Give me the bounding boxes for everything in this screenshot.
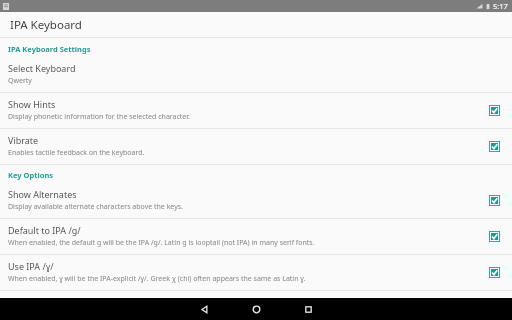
button[interactable]: Use IPA /ɣ/	[484, 262, 504, 282]
staticText: Show Hints	[8, 98, 56, 110]
button[interactable]: Show Hints	[484, 100, 504, 120]
staticText: When enabled, the default g will be the …	[8, 238, 315, 248]
staticText: 5:17	[493, 1, 508, 11]
button[interactable]: Vibrate	[484, 136, 504, 156]
button[interactable]: Show Alternates	[0, 183, 512, 218]
staticText: Key Options	[8, 170, 54, 180]
button[interactable]: Select Keyboard	[0, 57, 512, 92]
button[interactable]: Use IPA /ɣ/	[0, 255, 512, 290]
button[interactable]: Default to IPA /g/	[0, 219, 512, 254]
staticText: Display phonetic information for the sel…	[8, 112, 190, 122]
button[interactable]: Back	[178, 298, 230, 320]
staticText: Show Alternates	[8, 188, 77, 200]
staticText: Display available alternate characters a…	[8, 202, 183, 212]
staticText: Default to IPA /g/	[8, 224, 81, 236]
button[interactable]: Show Hints	[0, 93, 512, 128]
button[interactable]: Default to IPA /g/	[484, 226, 504, 246]
button[interactable]: Vibrate	[0, 129, 512, 164]
button[interactable]: Home	[230, 298, 282, 320]
staticText: Use IPA /ɣ/	[8, 260, 54, 272]
button[interactable]: Show Alternates	[484, 190, 504, 210]
staticText: Select Keyboard	[8, 62, 76, 74]
staticText: Qwerty	[8, 76, 32, 86]
staticText: IPA Keyboard Settings	[8, 44, 91, 54]
button[interactable]: Recents	[282, 298, 334, 320]
staticText: Enables tactile feedback on the keyboard…	[8, 148, 145, 158]
staticText: IPA Keyboard	[10, 17, 82, 33]
staticText: When enabled, ɣ will be the IPA-explicit…	[8, 274, 306, 284]
staticText: Vibrate	[8, 134, 39, 146]
